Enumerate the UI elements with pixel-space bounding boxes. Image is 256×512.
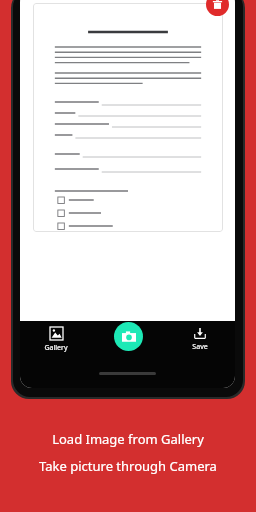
staticText: Load Image from Gallery <box>52 430 204 448</box>
button[interactable]: Take picture <box>114 322 143 351</box>
button[interactable]: Save <box>164 327 235 352</box>
staticText: Take picture through Camera <box>39 457 217 475</box>
button[interactable]: Gallery <box>20 327 92 353</box>
staticText: Gallery <box>44 343 68 353</box>
staticText: Save <box>192 342 208 352</box>
button[interactable]: Delete <box>206 0 229 16</box>
